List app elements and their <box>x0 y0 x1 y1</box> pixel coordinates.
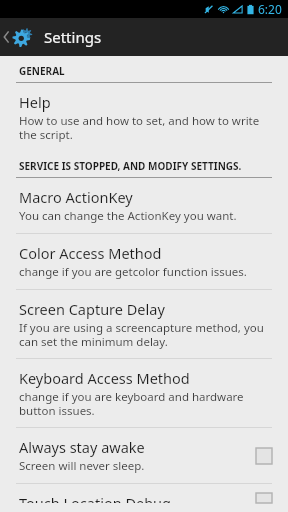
staticText: Touch Location Debug <box>19 493 171 503</box>
staticText: Keyboard Access Method <box>19 368 190 388</box>
staticText: GENERAL <box>19 64 65 78</box>
button[interactable]: Navigate up <box>0 26 36 48</box>
staticText: Help <box>19 92 51 112</box>
staticText: You can change the ActionKey you want. <box>19 208 237 224</box>
button[interactable]: Help <box>0 83 288 151</box>
staticText: Settings <box>44 27 102 47</box>
staticText: Screen will never sleep. <box>19 458 145 474</box>
staticText: Always stay awake <box>19 437 145 457</box>
button[interactable]: Macro ActionKey <box>0 178 288 233</box>
staticText: How to use and how to set, and how to wr… <box>19 113 270 142</box>
button[interactable]: Screen Capture Delay <box>0 290 288 358</box>
staticText: SERVICE IS STOPPED, AND MODIFY SETTINGS. <box>19 159 242 173</box>
staticText: Macro ActionKey <box>19 187 133 207</box>
staticText: Color Access Method <box>19 243 162 263</box>
staticText: If you are using a screencapture method,… <box>19 320 270 349</box>
staticText: Screen Capture Delay <box>19 299 165 319</box>
button[interactable]: Always stay awake <box>0 428 288 483</box>
button[interactable]: Keyboard Access Method <box>0 359 288 427</box>
button[interactable]: Color Access Method <box>0 234 288 289</box>
staticText: change if you are keyboard and hardware … <box>19 389 270 418</box>
button[interactable]: Touch Location Debug <box>0 484 288 512</box>
staticText: change if you are getcolor function issu… <box>19 264 247 280</box>
staticText: 6:20 <box>258 1 282 17</box>
